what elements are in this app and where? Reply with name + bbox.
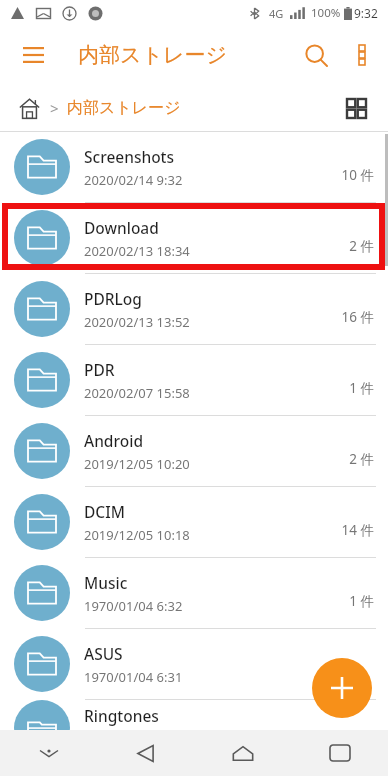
- staticText: PDRLog: [84, 288, 142, 309]
- button[interactable]: PDR: [0, 344, 388, 415]
- staticText: 2020/02/14 9:32: [84, 171, 183, 189]
- button[interactable]: Menu: [10, 32, 56, 78]
- button[interactable]: Music: [0, 557, 388, 628]
- staticText: DCIM: [84, 501, 125, 522]
- button[interactable]: ASUS: [0, 628, 388, 699]
- button[interactable]: Recent apps: [291, 730, 388, 776]
- staticText: 2019/12/05 10:20: [84, 455, 190, 473]
- staticText: 1970/01/04 6:31: [84, 668, 183, 686]
- staticText: 2019/12/05 10:18: [84, 526, 190, 544]
- staticText: 4G: [269, 6, 284, 21]
- button[interactable]: PDRLog: [0, 273, 388, 344]
- staticText: ASUS: [84, 643, 123, 664]
- staticText: 100%: [311, 5, 341, 21]
- staticText: 2020/02/13 13:52: [84, 313, 190, 331]
- staticText: 2 件: [349, 450, 374, 468]
- staticText: 内部ストレージ: [78, 42, 227, 68]
- button[interactable]: Grid view: [336, 88, 376, 128]
- staticText: PDR: [84, 359, 115, 380]
- staticText: Music: [84, 572, 128, 593]
- button[interactable]: Home: [194, 730, 291, 776]
- staticText: >: [50, 98, 59, 118]
- staticText: Download: [84, 217, 159, 238]
- button[interactable]: Screenshots: [0, 132, 388, 202]
- staticText: 1 件: [349, 379, 374, 397]
- staticText: 16 件: [341, 308, 374, 326]
- button[interactable]: Search: [292, 31, 340, 79]
- button[interactable]: Back: [97, 730, 194, 776]
- staticText: 9:32: [354, 5, 378, 21]
- staticText: Ringtones: [84, 705, 159, 726]
- button[interactable]: Download: [0, 202, 388, 273]
- staticText: 2 件: [349, 237, 374, 255]
- button[interactable]: Create new: [312, 658, 372, 718]
- staticText: Screenshots: [84, 146, 175, 167]
- button[interactable]: Android: [0, 415, 388, 486]
- button[interactable]: More options: [340, 33, 384, 77]
- staticText: 14 件: [341, 521, 374, 539]
- staticText: 2020/02/13 18:34: [84, 242, 190, 260]
- button[interactable]: DCIM: [0, 486, 388, 557]
- staticText: Android: [84, 430, 143, 451]
- staticText: 10 件: [341, 166, 374, 184]
- staticText: 2020/02/07 15:58: [84, 384, 190, 402]
- button[interactable]: Ringtones: [0, 699, 388, 730]
- staticText: 1970/01/04 6:32: [84, 597, 183, 615]
- staticText: 1 件: [349, 592, 374, 610]
- staticText: 内部ストレージ: [67, 98, 181, 118]
- button[interactable]: 内部ストレージ: [67, 98, 181, 118]
- button[interactable]: Hide navigation bar: [0, 730, 97, 776]
- button[interactable]: Home: [10, 89, 48, 127]
